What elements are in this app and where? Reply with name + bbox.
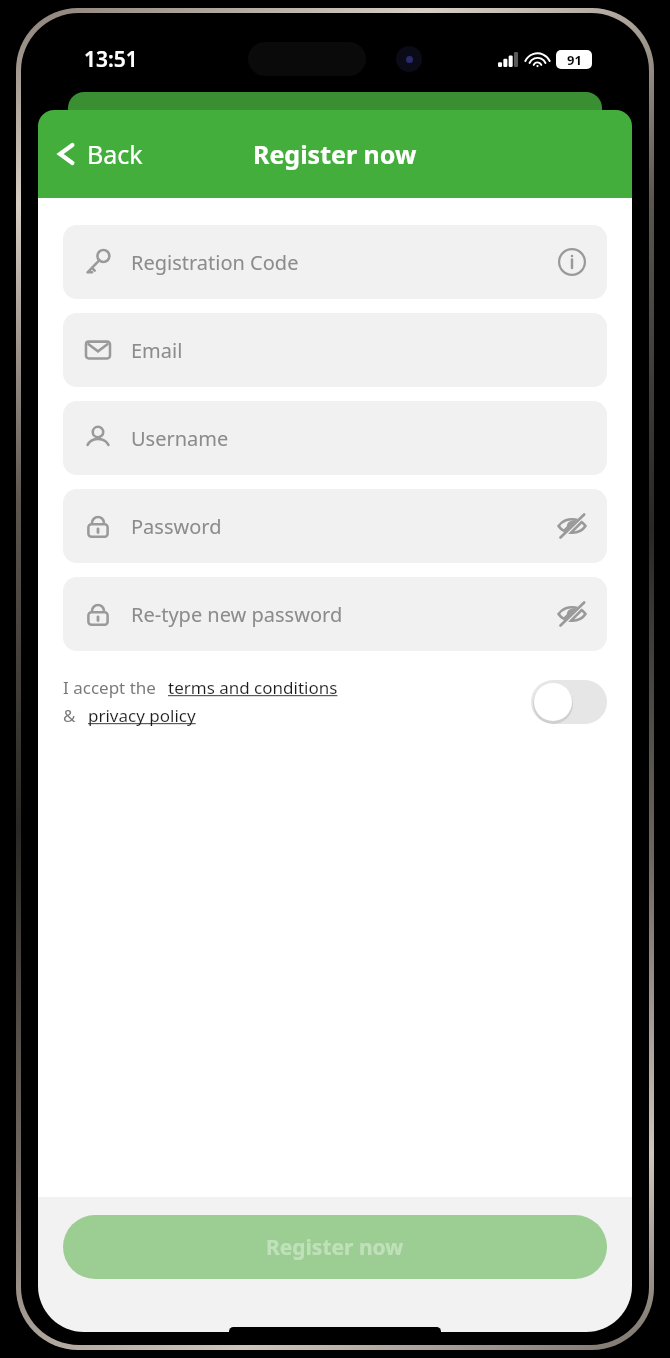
staticText: I accept the — [63, 676, 156, 699]
staticText: & — [63, 704, 76, 727]
button[interactable] — [555, 245, 589, 279]
button[interactable]: Registration Code — [63, 225, 607, 299]
button[interactable]: Re-type new password — [63, 577, 607, 651]
button[interactable]: Register now — [63, 1215, 607, 1279]
button[interactable]: Password — [63, 489, 607, 563]
button[interactable]: privacy policy — [88, 704, 196, 727]
staticText: terms and conditions — [168, 676, 338, 699]
button[interactable] — [555, 597, 589, 631]
staticText: Back — [87, 137, 143, 171]
staticText: privacy policy — [88, 704, 196, 727]
button[interactable]: Username — [63, 401, 607, 475]
staticText: Username — [131, 425, 589, 452]
staticText: Password — [131, 513, 555, 540]
button[interactable] — [555, 509, 589, 543]
button[interactable]: terms and conditions — [168, 676, 338, 699]
staticText: Register now — [253, 137, 417, 171]
staticText: 13:51 — [84, 45, 138, 74]
staticText: 91 — [567, 51, 582, 69]
staticText: Email — [131, 337, 589, 364]
staticText: Registration Code — [131, 249, 555, 276]
staticText: Re-type new password — [131, 601, 555, 628]
button[interactable]: Accept terms toggle — [531, 680, 607, 724]
button[interactable]: Email — [63, 313, 607, 387]
button[interactable]: Back — [38, 129, 157, 179]
staticText: Register now — [266, 1233, 404, 1262]
